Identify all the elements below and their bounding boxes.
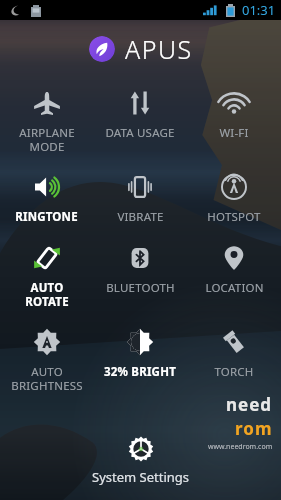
staticText: VIBRATE <box>117 209 164 225</box>
button[interactable]: LOCATION <box>187 241 281 298</box>
button[interactable]: VIBRATE <box>93 170 187 227</box>
button[interactable]: BLUETOOTH <box>93 241 187 298</box>
staticText: AUTO ROTATE <box>25 280 69 309</box>
button[interactable]: AUTO ROTATE <box>0 241 93 311</box>
button[interactable]: 32% BRIGHT <box>93 325 187 382</box>
staticText: rom <box>235 417 273 440</box>
staticText: 01:31 <box>242 1 276 19</box>
staticText: RINGTONE <box>15 209 78 225</box>
staticText: 32% BRIGHT <box>104 364 176 380</box>
button[interactable]: AUTO BRIGHTNESS <box>0 325 93 395</box>
button[interactable]: DATA USAGE <box>93 86 187 143</box>
button[interactable]: RINGTONE <box>0 170 93 227</box>
button[interactable]: WI-FI <box>187 86 281 143</box>
staticText: DATA USAGE <box>105 125 175 141</box>
button[interactable]: APUS <box>0 32 281 66</box>
staticText: TORCH <box>214 364 254 380</box>
staticText: AIRPLANE MODE <box>19 125 75 154</box>
staticText: LOCATION <box>205 280 264 296</box>
staticText: AUTO BRIGHTNESS <box>11 364 83 393</box>
staticText: WI-FI <box>219 125 249 141</box>
button[interactable]: HOTSPOT <box>187 170 281 227</box>
staticText: System Settings <box>92 468 190 486</box>
staticText: www.needrom.com <box>208 442 273 452</box>
staticText: APUS <box>125 32 193 66</box>
staticText: BLUETOOTH <box>106 280 175 296</box>
button[interactable]: AIRPLANE MODE <box>0 86 93 156</box>
staticText: need <box>226 393 273 416</box>
button[interactable]: TORCH <box>187 325 281 382</box>
staticText: HOTSPOT <box>207 209 261 225</box>
button[interactable]: System Settings <box>0 436 281 486</box>
